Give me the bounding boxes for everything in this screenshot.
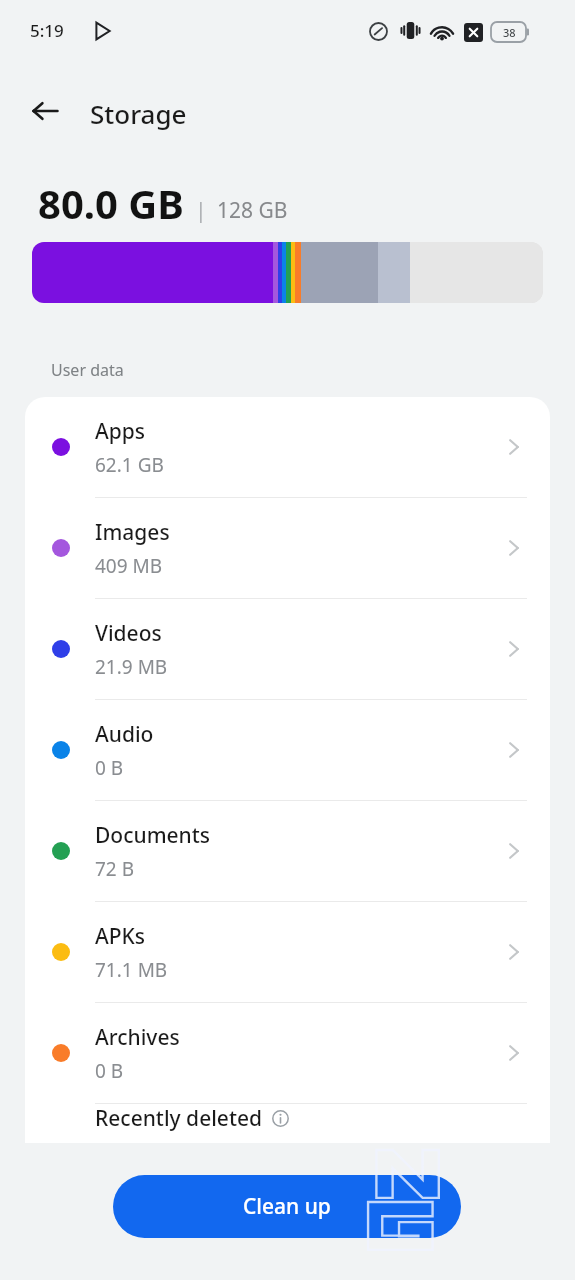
staticText: Storage <box>90 96 187 131</box>
staticText: 0 B <box>95 1058 124 1084</box>
staticText: 128 GB <box>217 196 288 225</box>
button[interactable]: APKs <box>25 902 550 1002</box>
staticText: 38 <box>503 25 516 40</box>
staticText: User data <box>51 359 124 381</box>
staticText: 0 B <box>95 755 124 781</box>
button[interactable]: Back <box>22 88 68 134</box>
button[interactable]: Images <box>25 498 550 598</box>
staticText: Apps <box>95 417 146 446</box>
staticText: | <box>195 196 207 225</box>
staticText: 21.9 MB <box>95 654 168 680</box>
staticText: 62.1 GB <box>95 452 164 478</box>
staticText: 5:19 <box>30 19 64 42</box>
staticText: 80.0 GB <box>38 176 184 230</box>
button[interactable]: Clean up <box>113 1175 461 1238</box>
staticText: APKs <box>95 922 146 951</box>
button[interactable]: Apps <box>25 397 550 497</box>
button[interactable]: Videos <box>25 599 550 699</box>
staticText: Audio <box>95 720 154 749</box>
staticText: 409 MB <box>95 553 163 579</box>
staticText: Documents <box>95 821 211 850</box>
button[interactable]: Recently deleted <box>25 1104 550 1143</box>
staticText: 72 B <box>95 856 135 882</box>
staticText: Clean up <box>243 1192 331 1221</box>
button[interactable]: Documents <box>25 801 550 901</box>
staticText: Archives <box>95 1023 180 1052</box>
staticText: Images <box>95 518 170 547</box>
button[interactable]: Audio <box>25 700 550 800</box>
staticText: Recently deleted <box>95 1104 263 1133</box>
button[interactable]: Archives <box>25 1003 550 1103</box>
staticText: 71.1 MB <box>95 957 168 983</box>
staticText: Videos <box>95 619 162 648</box>
